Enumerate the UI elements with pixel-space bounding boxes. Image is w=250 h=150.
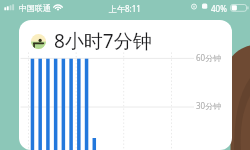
staticText: 30分钟 <box>196 100 222 111</box>
staticText: 60分钟 <box>196 52 222 63</box>
staticText: 中国联通 <box>19 3 51 13</box>
staticText: 8小时7分钟 <box>54 28 152 54</box>
staticText: 40% <box>211 3 227 14</box>
other: Sleep <box>31 34 46 49</box>
button[interactable]: 60分钟 <box>19 20 232 150</box>
staticText: 上午8:11 <box>109 3 141 14</box>
